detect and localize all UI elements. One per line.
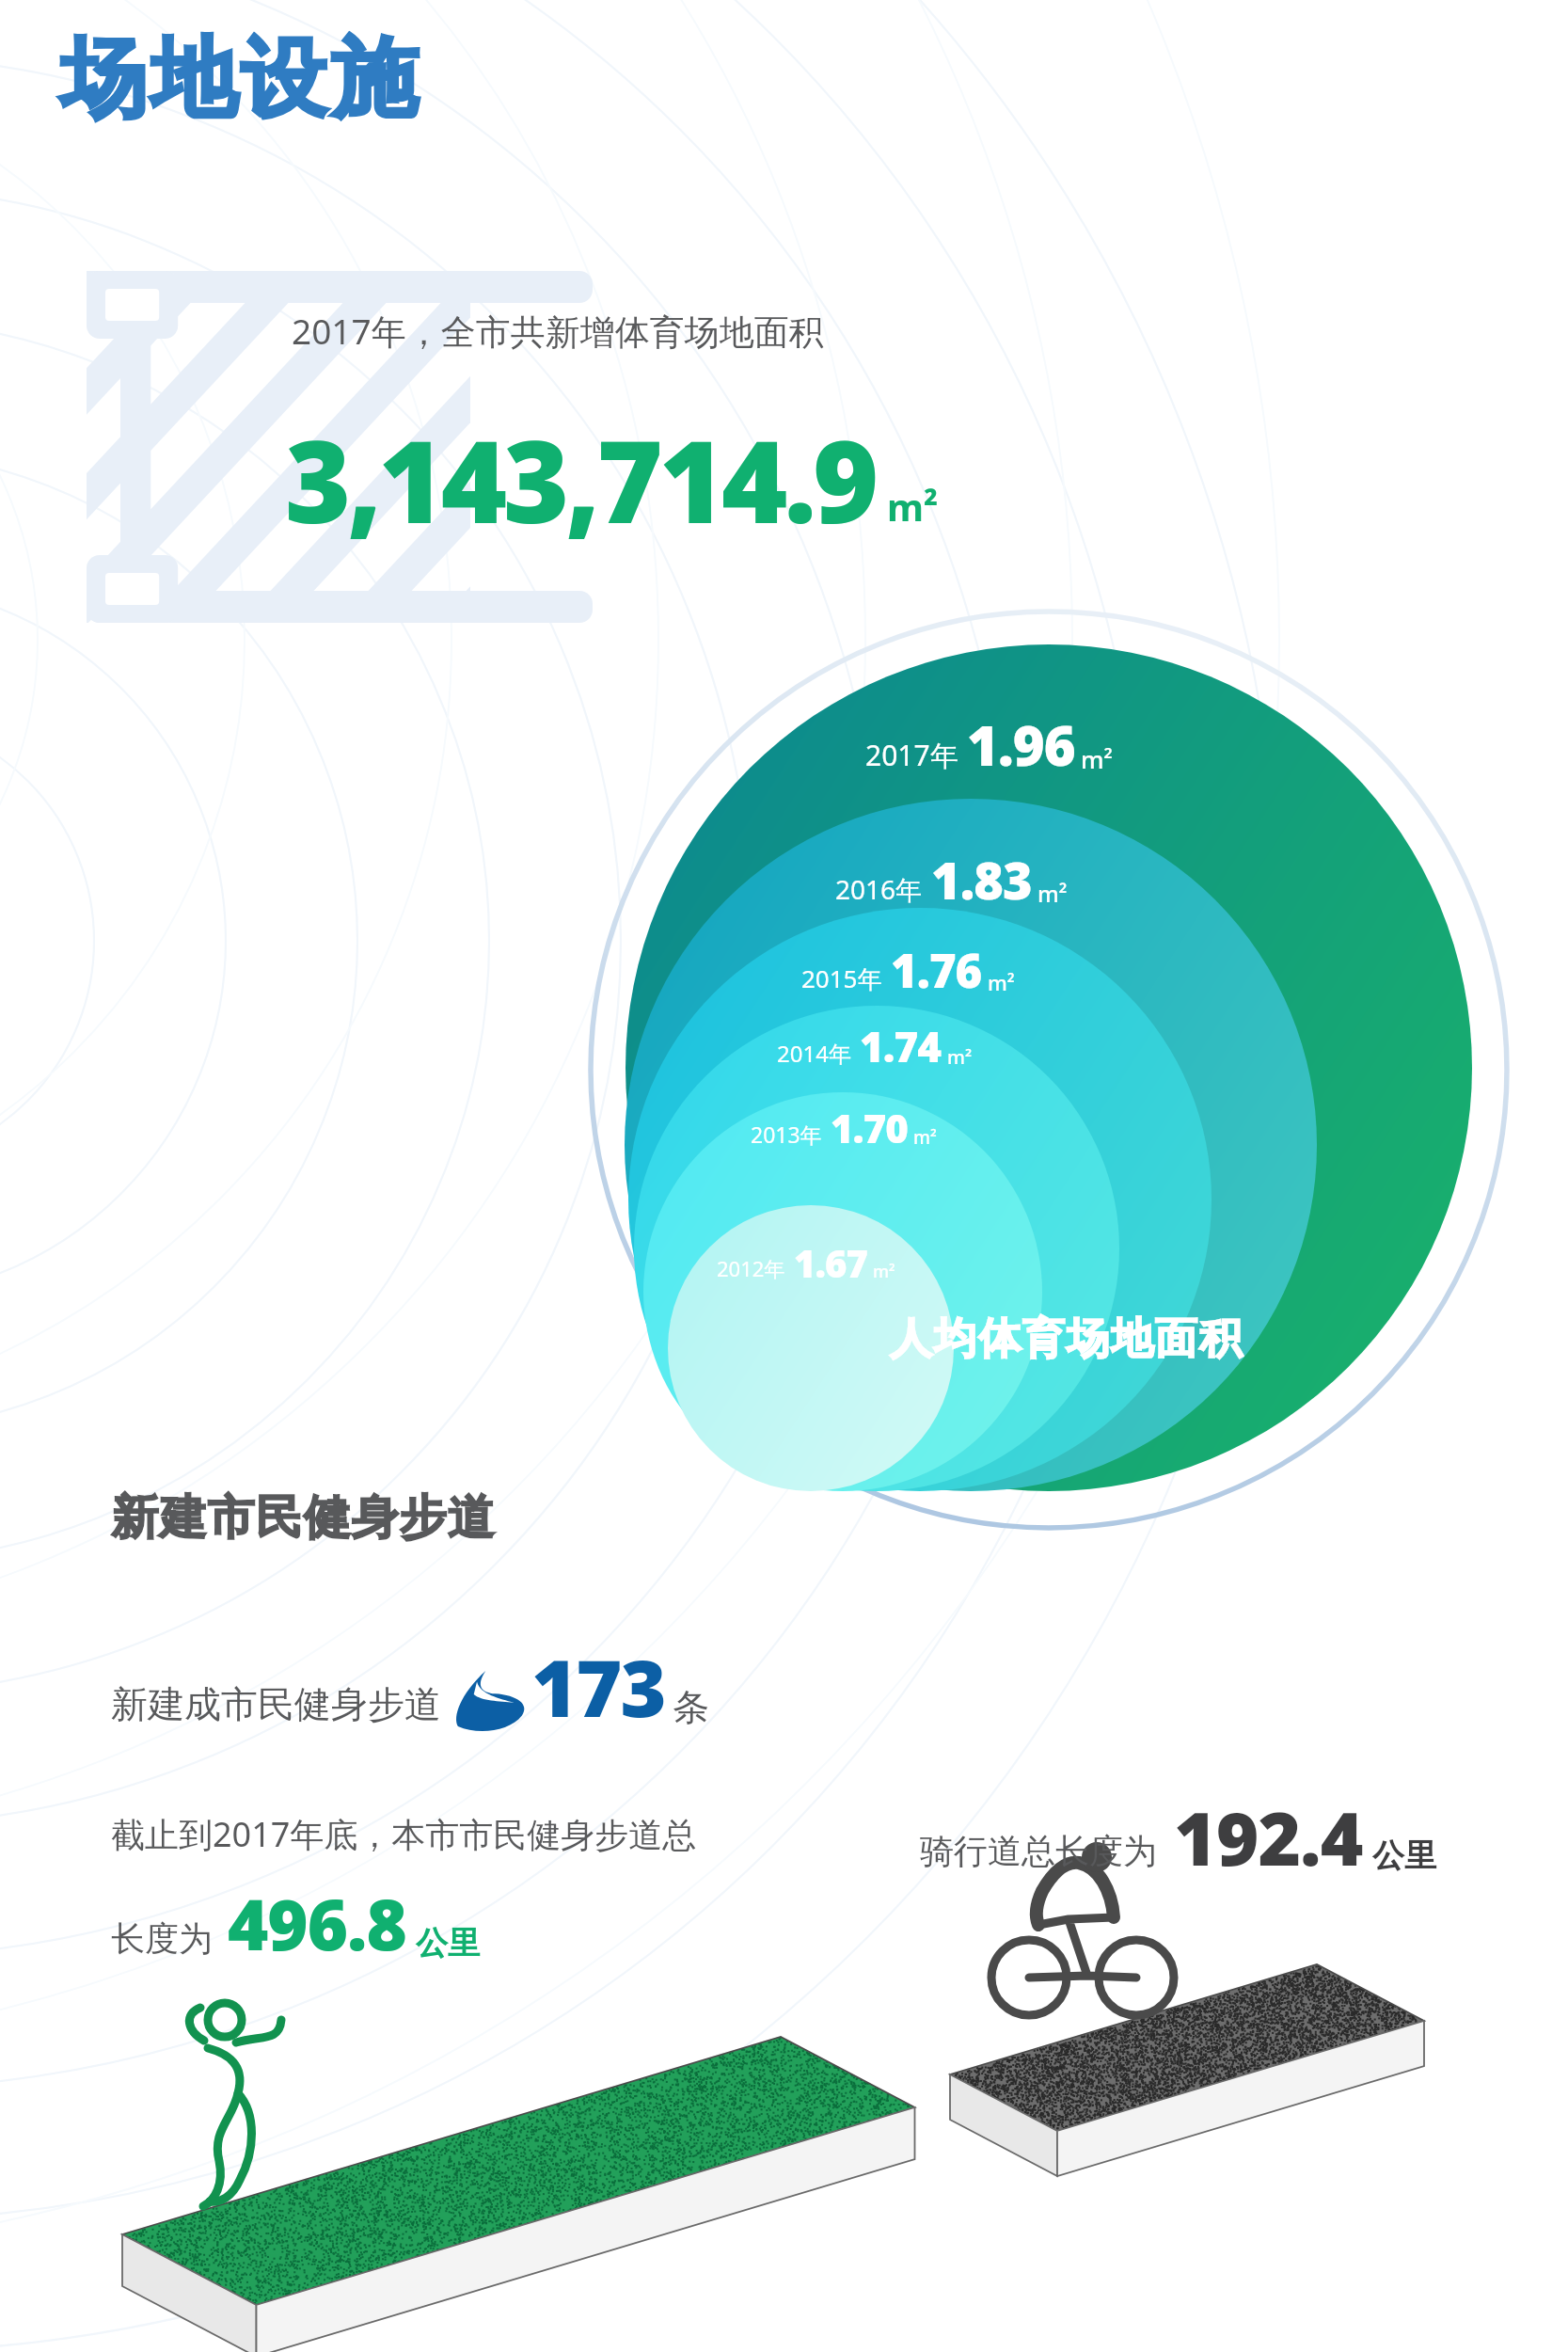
other: New trails badge [452, 1668, 531, 1736]
staticText: 1.70 [831, 1101, 908, 1154]
staticText: 496.8 [228, 1876, 406, 1971]
staticText: 1.83 [931, 845, 1032, 914]
staticText: 骑行道总长度为 [920, 1830, 1157, 1872]
staticText: 公里 [416, 1923, 480, 1963]
staticText: m² [947, 1044, 973, 1070]
staticText: 192.4 [1174, 1788, 1363, 1887]
staticText: 2014年 [777, 1038, 851, 1069]
button[interactable]: 新建市民健身步道 [111, 1488, 495, 1548]
staticText: 2015年 [801, 961, 882, 995]
button[interactable]: 场地设施 [58, 24, 420, 134]
staticText: 场地设施 [58, 24, 420, 134]
staticText: m² [1037, 878, 1068, 909]
staticText: 2016年 [835, 871, 923, 907]
staticText: 公里 [1372, 1836, 1436, 1876]
staticText: 2017年 [865, 736, 958, 774]
staticText: 长度为 [111, 1917, 213, 1960]
staticText: 173 [531, 1632, 665, 1740]
staticText: m² [873, 1260, 895, 1283]
staticText: 2012年 [717, 1254, 785, 1282]
staticText: m² [887, 481, 939, 532]
staticText: 条 [673, 1684, 709, 1730]
staticText: m² [1081, 742, 1113, 775]
staticText: 新建市民健身步道 [111, 1488, 495, 1548]
staticText: 2013年 [751, 1120, 822, 1149]
staticText: m² [988, 968, 1015, 996]
staticText: 3,143,714.9 [285, 403, 876, 556]
staticText: 1.96 [967, 707, 1075, 782]
staticText: 人均体育场地面积 [889, 1312, 1243, 1366]
staticText: 2017年，全市共新增体育场地面积 [292, 307, 824, 355]
staticText: 截止到2017年底，本市市民健身步道总 [111, 1811, 697, 1857]
staticText: 1.76 [891, 939, 982, 1002]
staticText: 1.67 [794, 1237, 867, 1288]
staticText: 新建成市民健身步道 [111, 1681, 441, 1727]
staticText: m² [913, 1125, 937, 1150]
staticText: 1.74 [860, 1018, 942, 1074]
